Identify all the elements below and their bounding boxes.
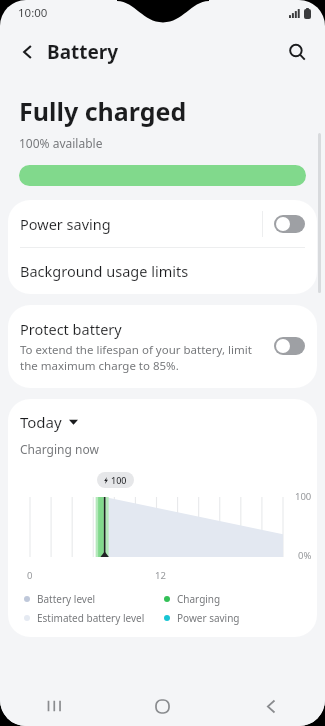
button[interactable]: Protect battery (8, 305, 317, 388)
staticText: Protect battery (20, 319, 122, 339)
button[interactable]: Search (277, 32, 317, 72)
button[interactable]: Back (235, 686, 307, 726)
button[interactable]: Home (126, 686, 198, 726)
staticText: Fully charged (19, 94, 187, 128)
button[interactable]: Recent apps (18, 686, 90, 726)
staticText: Battery (47, 39, 119, 65)
staticText: 12 (155, 569, 166, 582)
staticText: 10:00 (18, 5, 48, 21)
button[interactable]: Power saving (8, 200, 317, 247)
staticText: Today (20, 412, 62, 432)
staticText: Background usage limits (20, 261, 189, 281)
button[interactable]: Toggle (274, 337, 305, 355)
staticText: Power saving (20, 214, 262, 234)
staticText: To extend the lifespan of your battery, … (20, 342, 265, 373)
staticText: 100 (295, 490, 312, 503)
button[interactable]: Toggle (274, 215, 305, 233)
staticText: 0% (298, 549, 312, 562)
staticText: Power saving (177, 611, 240, 625)
button[interactable]: Background usage limits (8, 248, 317, 294)
staticText: Estimated battery level (37, 611, 145, 625)
staticText: 100% available (19, 135, 103, 151)
button[interactable]: Back (8, 32, 48, 72)
button[interactable]: Today (20, 412, 78, 432)
staticText: 0 (27, 569, 33, 582)
staticText: Charging (177, 592, 221, 606)
staticText: 100 (111, 474, 127, 486)
staticText: Charging now (20, 441, 99, 457)
staticText: Battery level (37, 592, 96, 606)
